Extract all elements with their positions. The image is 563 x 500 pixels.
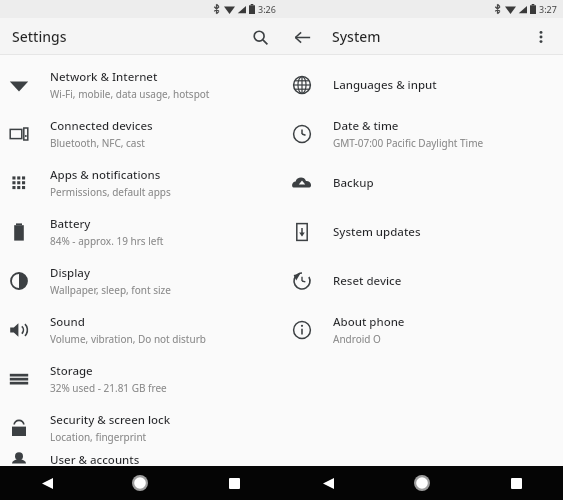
button[interactable]: Back [286,21,318,53]
staticText: GMT-07:00 Pacific Daylight Time [333,136,484,150]
staticText: Location, fingerprint [50,430,147,444]
staticText: Android O [333,332,381,346]
staticText: Bluetooth, NFC, cast [50,136,145,150]
staticText: Backup [333,175,374,191]
staticText: Languages & input [333,77,437,93]
button[interactable]: More options [525,21,557,53]
button[interactable]: Battery [0,207,282,256]
button[interactable]: Recents [219,468,249,498]
button[interactable]: Storage [0,354,282,403]
staticText: 32% used - 21.81 GB free [50,381,167,395]
staticText: Apps & notifications [50,167,161,183]
button[interactable]: Date & time [282,109,563,158]
staticText: User & accounts [50,452,140,466]
button[interactable]: Sound [0,305,282,354]
staticText: Volume, vibration, Do not disturb [50,332,206,346]
staticText: Display [50,265,90,281]
button[interactable]: Security & screen lock [0,403,282,452]
button[interactable]: About phone [282,305,563,354]
button[interactable]: User & accounts [0,452,282,466]
staticText: Sound [50,314,85,330]
button[interactable]: Connected devices [0,109,282,158]
button[interactable]: Home [407,468,437,498]
staticText: Settings [12,27,67,46]
button[interactable]: Display [0,256,282,305]
button[interactable]: Back [32,468,62,498]
button[interactable]: Network & Internet [0,60,282,109]
button[interactable]: Reset device [282,256,563,305]
button[interactable]: Back [313,468,343,498]
button[interactable]: Recents [501,468,531,498]
staticText: Connected devices [50,118,153,134]
staticText: 3:27 [539,3,557,15]
button[interactable]: Apps & notifications [0,158,282,207]
staticText: Network & Internet [50,69,158,85]
button[interactable]: Home [125,468,155,498]
staticText: Battery [50,216,91,232]
staticText: Date & time [333,118,399,134]
staticText: Wi-Fi, mobile, data usage, hotspot [50,87,210,101]
staticText: Reset device [333,273,402,289]
staticText: 84% - approx. 19 hrs left [50,234,164,248]
button[interactable]: Languages & input [282,60,563,109]
staticText: Wallpaper, sleep, font size [50,283,171,297]
staticText: System [332,27,381,46]
staticText: About phone [333,314,405,330]
staticText: System updates [333,224,421,240]
button[interactable]: Search [244,21,276,53]
staticText: Permissions, default apps [50,185,171,199]
staticText: Storage [50,363,93,379]
button[interactable]: System updates [282,207,563,256]
staticText: 3:26 [258,3,276,15]
staticText: Security & screen lock [50,412,171,428]
button[interactable]: Backup [282,158,563,207]
